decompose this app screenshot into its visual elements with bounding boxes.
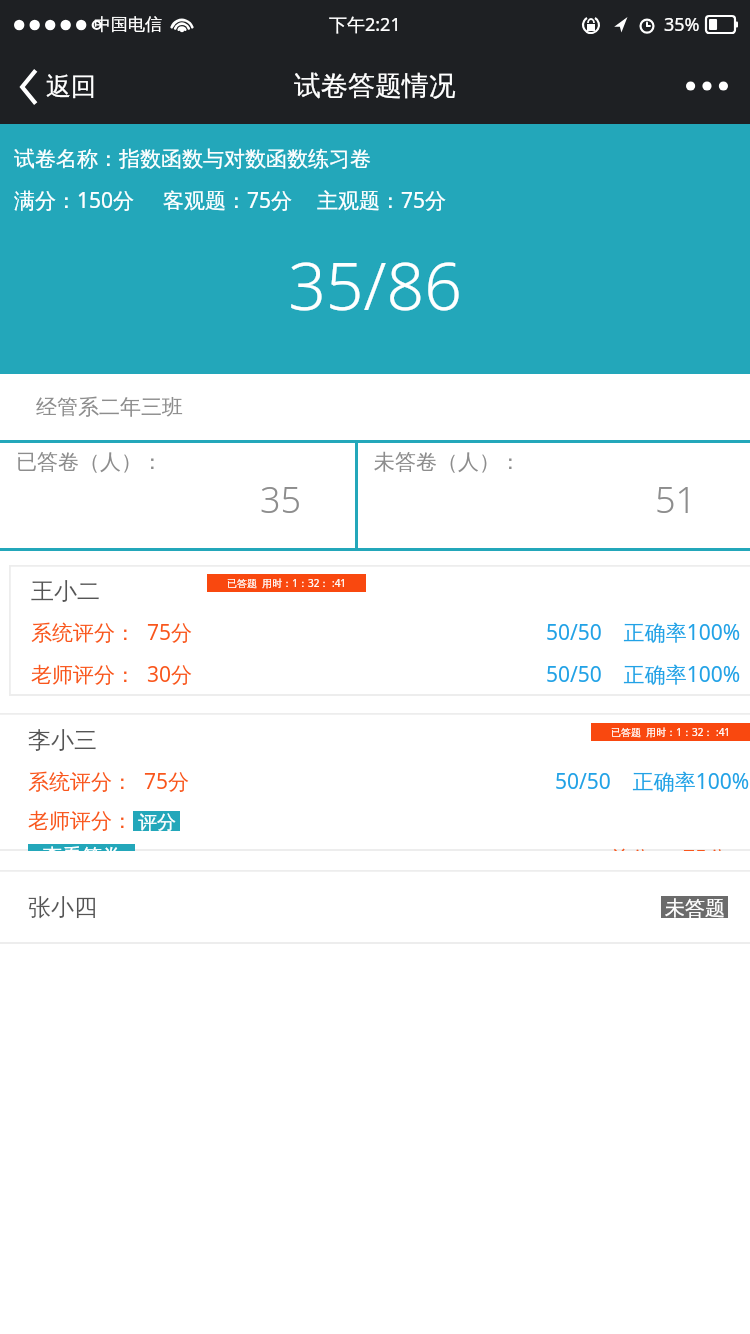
staticText: 35% [664, 12, 700, 37]
button[interactable]: 未答题 [661, 896, 728, 918]
staticText: 返回 [46, 71, 96, 102]
staticText: 下午2:21 [329, 12, 401, 37]
staticText: 系统评分： 75分 [31, 618, 192, 647]
staticText: 50/50 正确率100% [546, 660, 741, 689]
button[interactable]: 已答卷（人）： [0, 443, 355, 548]
staticText: 50/50 正确率100% [546, 618, 741, 647]
staticText: 未答题 [665, 896, 725, 918]
staticText: 王小二 [31, 577, 100, 606]
staticText: 已答题 用时：1：32： :41 [611, 725, 731, 739]
button[interactable]: 返回 [0, 61, 112, 112]
staticText: 满分：150分 [14, 186, 135, 215]
staticText: 已答题 用时：1：32： :41 [227, 576, 347, 590]
staticText: 试卷答题情况 [294, 69, 456, 103]
button[interactable]: 未答卷（人）： [358, 443, 750, 548]
staticText: 35 [0, 475, 301, 524]
staticText: 51 [358, 475, 696, 524]
button[interactable]: 李小三 [0, 713, 750, 851]
staticText: 35/86 [0, 239, 750, 329]
staticText: 已答卷（人）： [16, 449, 355, 475]
staticText: 评分 [138, 811, 176, 831]
staticText: 李小三 [28, 726, 97, 755]
staticText: 系统评分： 75分 [28, 767, 189, 796]
staticText: 老师评分： [28, 808, 133, 834]
staticText: 主观题：75分 [317, 186, 447, 215]
button[interactable]: 查看答卷 [28, 844, 135, 851]
button[interactable]: 张小四 [0, 870, 750, 944]
staticText: 客观题：75分 [163, 186, 293, 215]
staticText: 张小四 [28, 893, 97, 922]
staticText: 未答卷（人）： [374, 449, 750, 475]
staticText: 中国电信 [94, 14, 162, 35]
button[interactable]: More options [664, 59, 750, 113]
staticText: 试卷名称：指数函数与对数函数练习卷 [14, 146, 371, 172]
staticText: 经管系二年三班 [36, 394, 183, 420]
staticText: 总分： 75分 [609, 844, 728, 851]
button[interactable]: 王小二 [9, 565, 750, 696]
staticText: 50/50 正确率100% [555, 767, 750, 796]
staticText: 老师评分： 30分 [31, 660, 192, 689]
button[interactable]: 评分 [133, 811, 180, 831]
staticText: 查看答卷 [42, 844, 122, 851]
